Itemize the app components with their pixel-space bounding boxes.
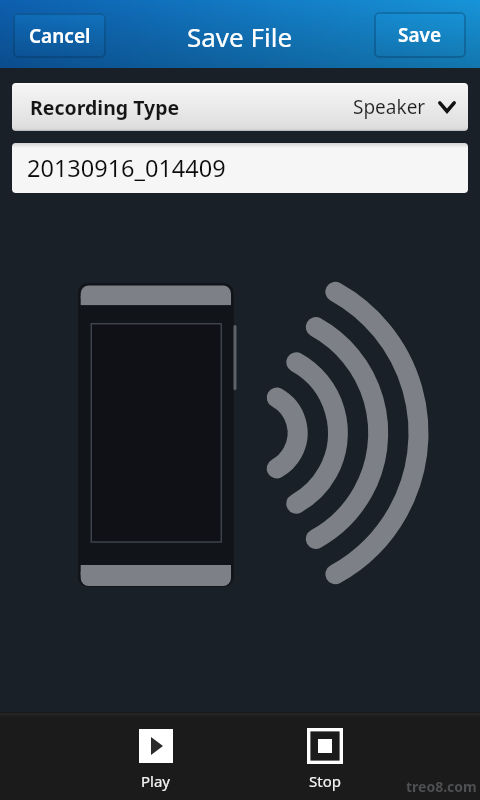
staticText: Play [141,771,171,791]
staticText: Recording Type [30,94,180,121]
staticText: treo8.com [406,777,477,796]
button[interactable]: Recording Type [12,83,468,131]
staticText: 20130916_014409 [27,152,226,184]
button[interactable]: 20130916_014409 [12,143,468,193]
staticText: Save [398,22,442,48]
button[interactable]: Play [108,721,204,797]
button[interactable]: Cancel [13,13,106,58]
button[interactable]: Save [374,12,466,58]
staticText: Save File [187,19,293,54]
staticText: Cancel [29,23,91,49]
button[interactable]: Stop [277,720,373,796]
staticText: Speaker [353,94,426,120]
staticText: Stop [309,771,341,791]
